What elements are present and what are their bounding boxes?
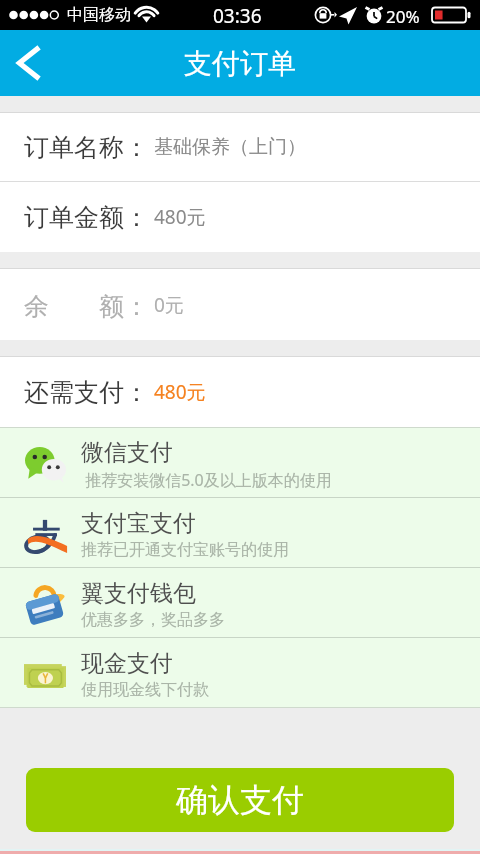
staticText: 还需支付： [24,377,149,408]
staticText: 推荐安装微信5.0及以上版本的使用 [81,469,332,491]
button[interactable]: 微信支付 [0,428,480,497]
staticText: 480元 [154,204,206,230]
staticText: 现金支付 [81,649,173,678]
button[interactable]: Back [0,30,58,96]
staticText: 20% [386,5,420,28]
staticText: 03:36 [213,3,262,29]
staticText: 中国移动 [67,5,131,25]
button[interactable]: 现金支付 [0,638,480,707]
staticText: 优惠多多，奖品多多 [81,610,225,630]
staticText: 支付订单 [184,46,296,81]
staticText: 订单金额： [24,202,149,233]
staticText: 翼支付钱包 [81,579,196,608]
staticText: 余 额： [24,288,149,322]
button[interactable]: 确认支付 [26,768,454,832]
staticText: 480元 [154,379,206,405]
staticText: 确认支付 [176,780,304,820]
staticText: 支付宝支付 [81,509,196,538]
staticText: 微信支付 [81,438,173,467]
staticText: 订单名称： [24,132,149,163]
button[interactable]: 支付宝支付 [0,498,480,567]
staticText: 基础保养（上门） [154,135,306,159]
staticText: 推荐已开通支付宝账号的使用 [81,540,289,560]
button[interactable]: 翼支付钱包 [0,568,480,637]
staticText: 使用现金线下付款 [81,680,209,700]
staticText: 0元 [154,292,184,318]
